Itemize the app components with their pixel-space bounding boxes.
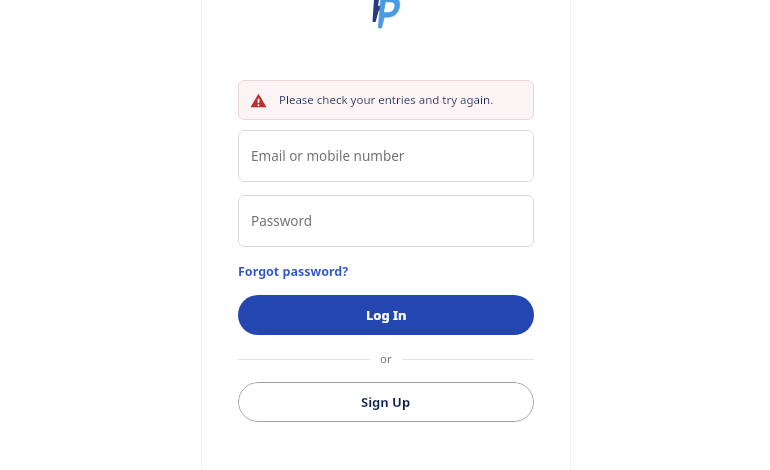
other: PayPal (373, 0, 399, 22)
button[interactable]: Log In (238, 295, 534, 335)
staticText: Log In (366, 306, 407, 324)
staticText: Password (251, 212, 313, 230)
staticText: Email or mobile number (251, 147, 405, 165)
staticText: Sign Up (361, 393, 411, 411)
staticText: Forgot password? (238, 263, 349, 280)
button[interactable]: Email or mobile number (238, 130, 534, 182)
button[interactable]: Sign Up (238, 382, 534, 422)
staticText: or (380, 351, 392, 367)
staticText: Please check your entries and try again. (279, 92, 494, 108)
button[interactable]: Forgot password? (238, 263, 534, 280)
button[interactable]: Error (238, 80, 534, 120)
button[interactable]: Password (238, 195, 534, 247)
other: Error (250, 92, 267, 109)
